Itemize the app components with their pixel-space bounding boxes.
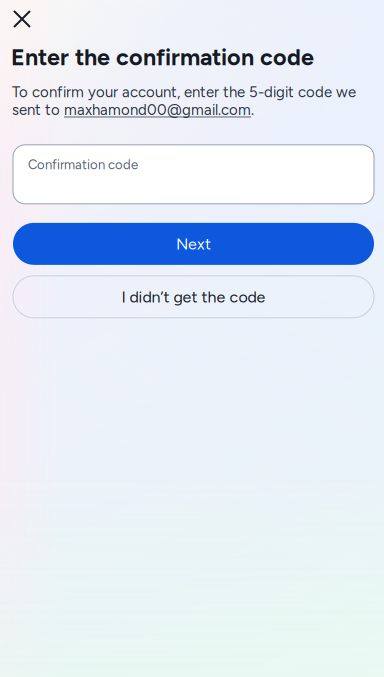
staticText: I didn’t get the code [121,287,265,306]
button[interactable]: Next [13,223,374,265]
button[interactable]: Close [0,0,44,40]
button[interactable]: I didn’t get the code [13,276,374,318]
staticText: Enter the confirmation code [11,43,314,71]
staticText: Next [176,234,211,253]
staticText: Confirmation code [28,157,138,172]
staticText: To confirm your account, enter the 5-dig… [12,83,356,119]
